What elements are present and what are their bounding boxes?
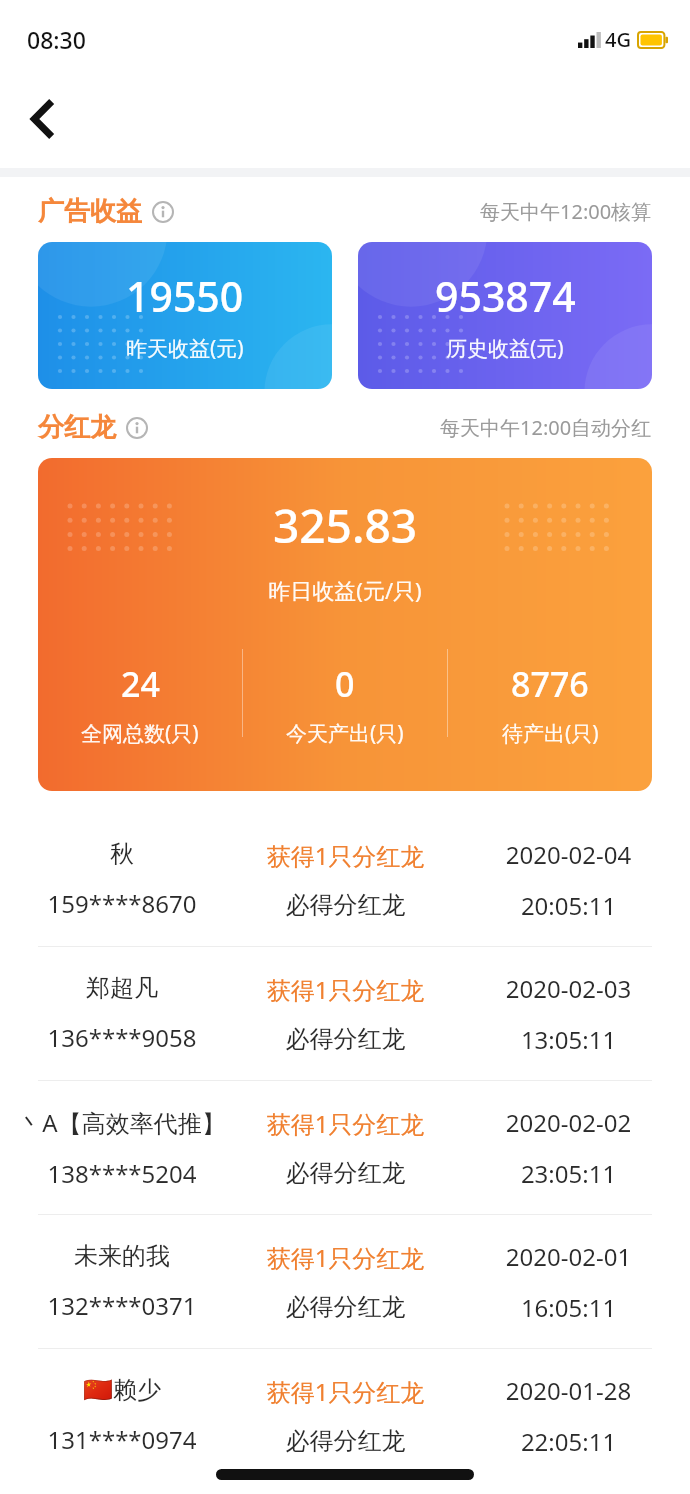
staticText: 24 <box>121 661 160 707</box>
staticText: 昨天收益(元) <box>126 334 244 363</box>
staticText: 953874 <box>435 268 576 324</box>
staticText: 2020-01-28 <box>457 1374 680 1407</box>
staticText: 19550 <box>126 268 244 324</box>
staticText: 2020-02-01 <box>457 1240 680 1273</box>
button[interactable]: Back <box>14 91 70 147</box>
staticText: 分红龙 <box>38 411 116 444</box>
staticText: 2020-02-03 <box>457 972 680 1005</box>
button[interactable]: 🇨🇳赖少 <box>0 1349 690 1482</box>
staticText: 16:05:11 <box>457 1291 680 1324</box>
staticText: 广告收益 <box>38 195 142 228</box>
staticText: 23:05:11 <box>457 1157 680 1190</box>
button[interactable]: 325.83 <box>38 458 652 791</box>
button[interactable]: 秋 <box>0 813 690 946</box>
staticText: 325.83 <box>38 494 652 557</box>
staticText: 131****0974 <box>10 1423 234 1456</box>
button[interactable]: 19550 <box>38 242 332 389</box>
staticText: 136****9058 <box>10 1021 234 1054</box>
staticText: 丶A【高效率代推】 <box>10 1106 234 1139</box>
staticText: 今天产出(只) <box>286 719 404 748</box>
staticText: 22:05:11 <box>457 1425 680 1458</box>
staticText: 0 <box>335 661 355 707</box>
staticText: 获得1只分红龙 <box>234 1375 457 1408</box>
staticText: 132****0371 <box>10 1289 234 1322</box>
staticText: 08:30 <box>27 24 86 55</box>
staticText: 获得1只分红龙 <box>234 1241 457 1274</box>
button[interactable]: 丶A【高效率代推】 <box>0 1081 690 1214</box>
staticText: 4G <box>605 26 631 53</box>
staticText: 获得1只分红龙 <box>234 1107 457 1140</box>
staticText: 昨日收益(元/只) <box>38 575 652 605</box>
staticText: 郑超凡 <box>10 973 234 1003</box>
staticText: 必得分红龙 <box>234 1292 457 1322</box>
staticText: 必得分红龙 <box>234 1158 457 1188</box>
staticText: 20:05:11 <box>457 889 680 922</box>
staticText: 获得1只分红龙 <box>234 839 457 872</box>
staticText: 159****8670 <box>10 887 234 920</box>
button[interactable]: Info <box>151 200 175 224</box>
staticText: 未来的我 <box>10 1241 234 1271</box>
staticText: 8776 <box>511 661 589 707</box>
staticText: 必得分红龙 <box>234 1426 457 1456</box>
staticText: 2020-02-04 <box>457 838 680 871</box>
button[interactable]: Info <box>125 416 149 440</box>
staticText: 138****5204 <box>10 1157 234 1190</box>
staticText: 🇨🇳赖少 <box>10 1375 234 1405</box>
staticText: 必得分红龙 <box>234 1024 457 1054</box>
staticText: 必得分红龙 <box>234 890 457 920</box>
button[interactable]: 未来的我 <box>0 1215 690 1348</box>
button[interactable]: 郑超凡 <box>0 947 690 1080</box>
staticText: 历史收益(元) <box>446 334 564 363</box>
staticText: 秋 <box>10 839 234 869</box>
staticText: 待产出(只) <box>502 719 599 748</box>
button[interactable]: 953874 <box>358 242 652 389</box>
staticText: 2020-02-02 <box>457 1106 680 1139</box>
staticText: 每天中午12:00自动分红 <box>440 414 652 441</box>
staticText: 获得1只分红龙 <box>234 973 457 1006</box>
staticText: 全网总数(只) <box>81 719 199 748</box>
staticText: 13:05:11 <box>457 1023 680 1056</box>
staticText: 每天中午12:00核算 <box>480 198 652 225</box>
